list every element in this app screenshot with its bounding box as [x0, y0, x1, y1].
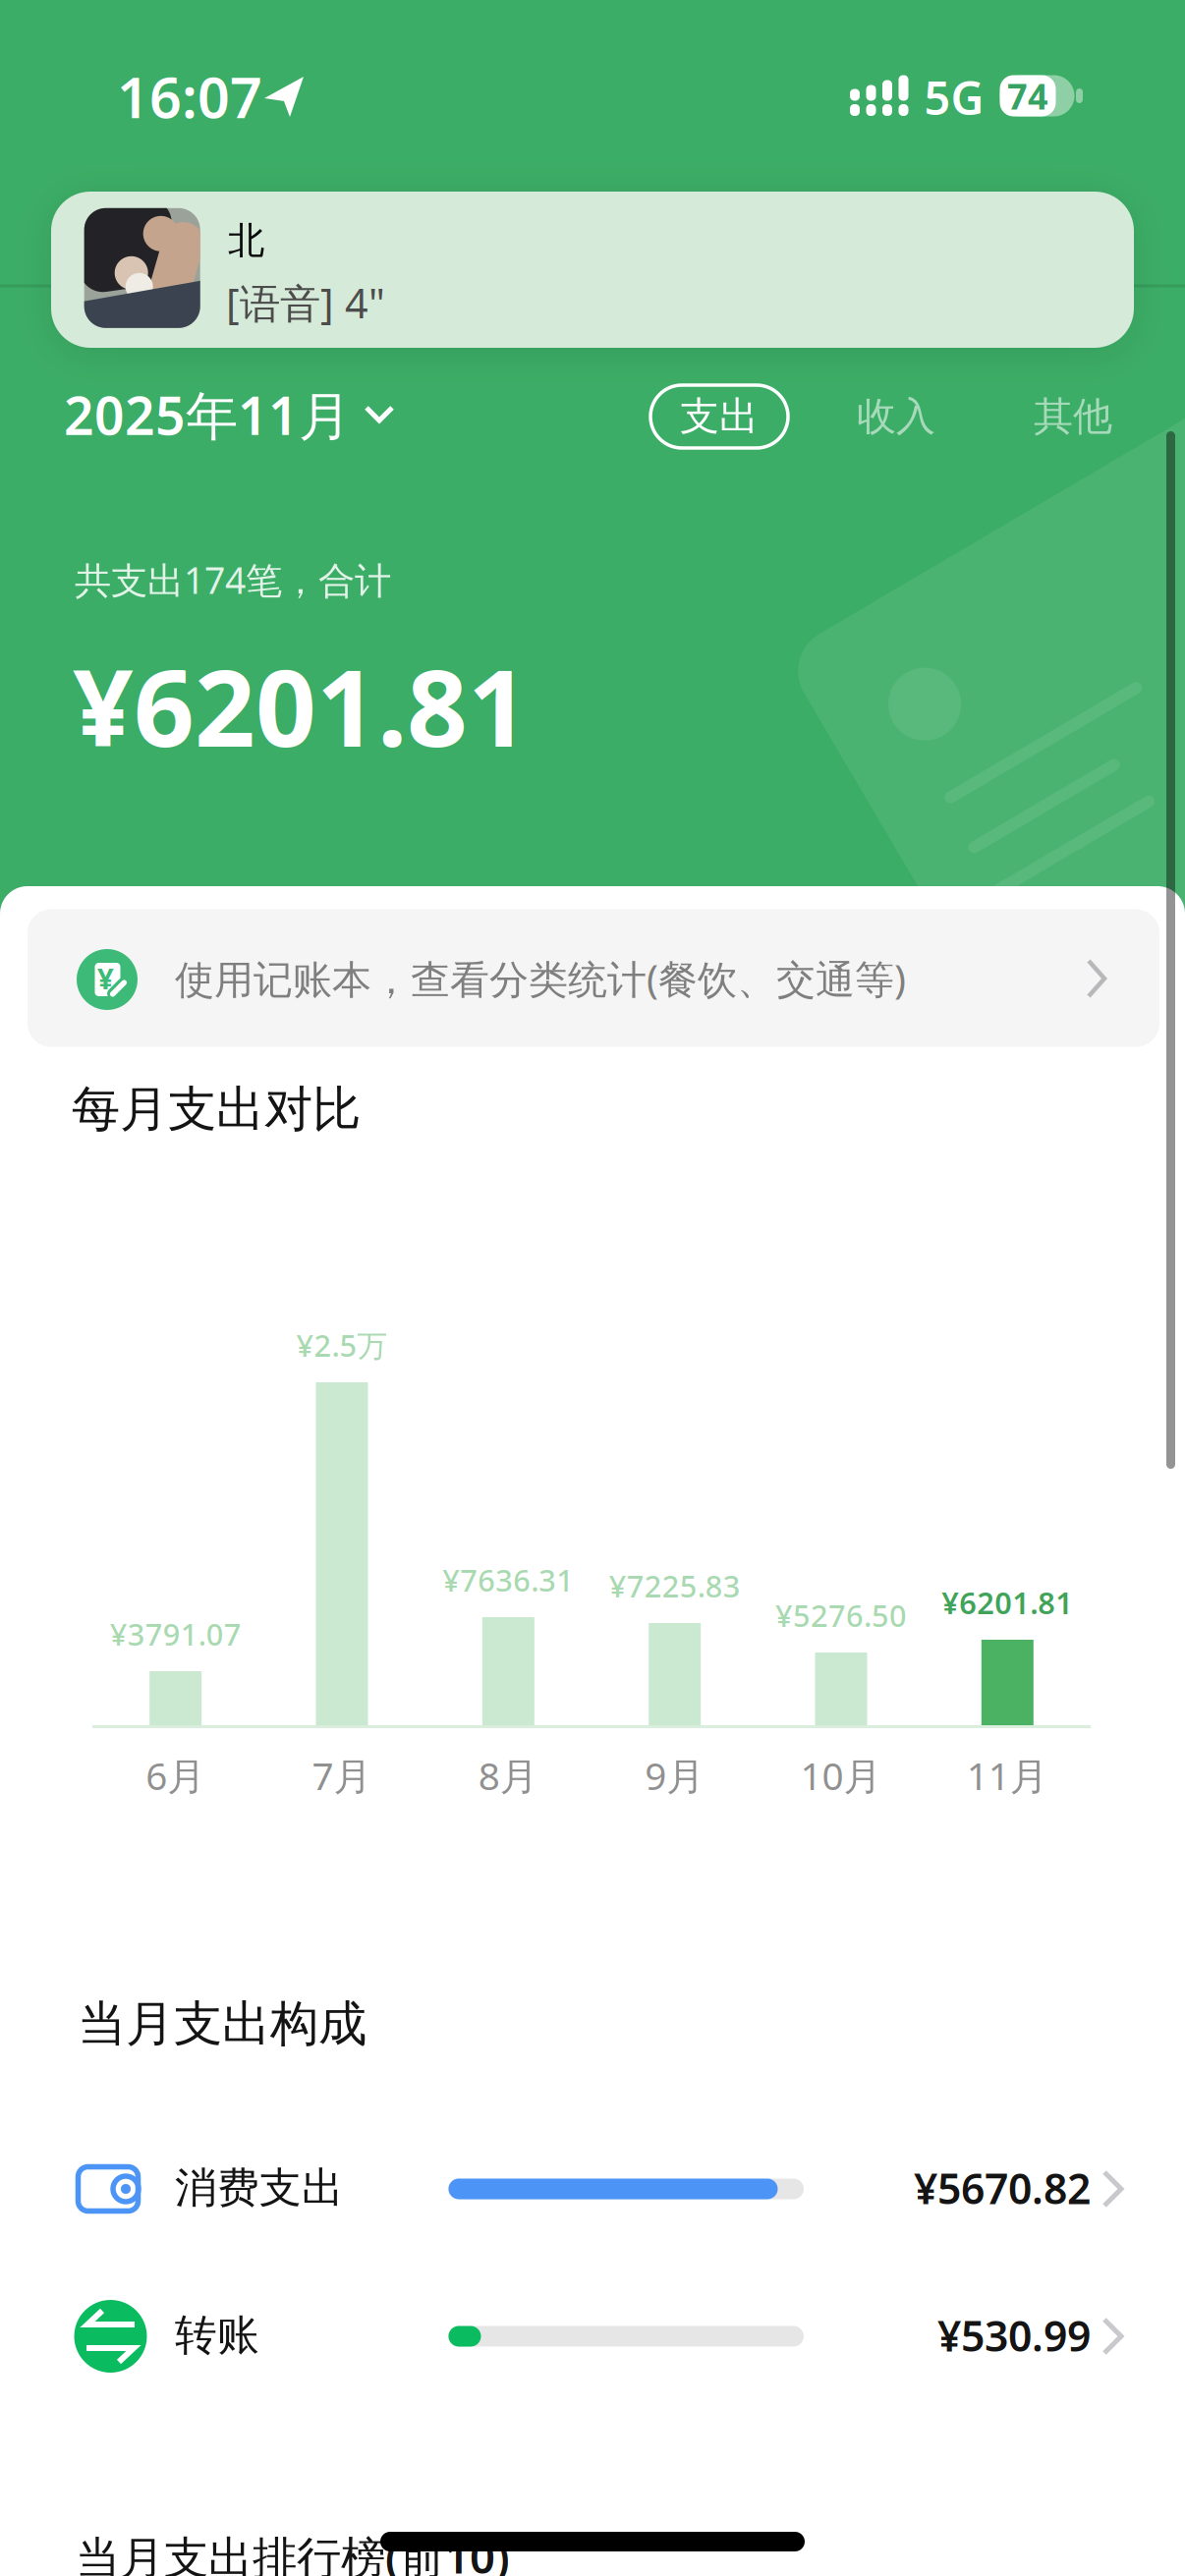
staticText: 共支出174笔，合计 — [75, 555, 391, 604]
staticText: ¥5670.82 — [914, 2160, 1091, 2216]
button[interactable]: ¥ — [28, 909, 1159, 1047]
staticText: 当月支出构成 — [78, 1994, 367, 2054]
staticText: 消费支出 — [175, 2162, 344, 2214]
staticText: ¥2.5万 — [296, 1325, 388, 1365]
staticText: ¥530.99 — [937, 2307, 1091, 2363]
button[interactable]: 收入 — [857, 392, 935, 441]
button[interactable]: 支出 — [650, 385, 788, 448]
button[interactable]: 消费支出 — [29, 2130, 1156, 2248]
staticText: 北 — [228, 218, 264, 263]
staticText: 5G — [924, 67, 984, 128]
staticText: 转账 — [175, 2310, 259, 2361]
staticText: 11月 — [967, 1750, 1048, 1800]
button[interactable]: 转账 — [29, 2277, 1156, 2395]
staticText: 使用记账本，查看分类统计(餐饮、交通等) — [175, 952, 906, 1005]
staticText: 74 — [1007, 72, 1048, 119]
button[interactable]: 2025年11月 — [64, 380, 394, 449]
staticText: ¥7636.31 — [442, 1560, 574, 1600]
staticText: ¥6201.81 — [942, 1582, 1073, 1622]
staticText: ¥ — [97, 959, 114, 997]
staticText: 10月 — [800, 1750, 882, 1800]
button[interactable]: 其他 — [1034, 392, 1112, 441]
button[interactable]: 北 — [51, 192, 1134, 348]
staticText: ¥3791.07 — [110, 1614, 241, 1654]
staticText: ¥5276.50 — [775, 1595, 907, 1635]
staticText: 2025年11月 — [64, 380, 351, 449]
staticText: 收入 — [857, 392, 935, 441]
staticText: 每月支出对比 — [72, 1079, 361, 1139]
staticText: 6月 — [146, 1750, 206, 1800]
staticText: 当月支出排行榜(前10) — [76, 2527, 510, 2576]
staticText: 支出 — [680, 392, 759, 441]
staticText: 8月 — [478, 1750, 538, 1800]
staticText: 16:07 — [117, 59, 262, 134]
staticText: ¥7225.83 — [609, 1566, 741, 1606]
staticText: 9月 — [645, 1750, 705, 1800]
staticText: [语音] 4" — [226, 276, 385, 330]
staticText: 7月 — [312, 1750, 372, 1800]
staticText: 其他 — [1034, 392, 1112, 441]
staticText: ¥6201.81 — [73, 635, 529, 776]
